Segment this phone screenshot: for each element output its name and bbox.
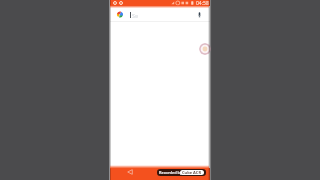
staticText: Recorded by [159, 170, 183, 175]
button[interactable]: Se [110, 6, 210, 22]
button[interactable]: Recorded by [157, 169, 206, 176]
button[interactable]: Recorder [199, 43, 211, 55]
button[interactable]: Back [123, 166, 137, 178]
staticText: Se [132, 12, 139, 19]
staticText: Cube ACR [182, 170, 202, 175]
staticText: 04:58 [196, 0, 209, 6]
